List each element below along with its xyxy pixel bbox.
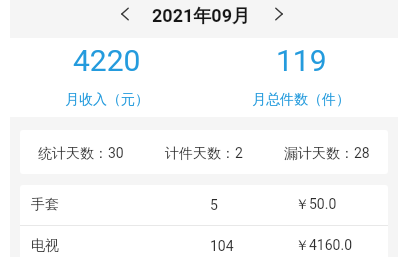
staticText: ￥4160.0 [295, 237, 353, 255]
staticText: 月总件数（件） [252, 91, 350, 109]
staticText: 计件天数：2 [165, 145, 243, 163]
staticText: 2021年09月 [152, 5, 250, 28]
button[interactable]: 手套 [20, 185, 388, 225]
button[interactable]: 电视 [20, 226, 388, 257]
button[interactable]: 统计天数：30 [20, 130, 388, 174]
staticText: 漏计天数：28 [284, 145, 370, 163]
staticText: 电视 [31, 237, 59, 255]
staticText: 119 [276, 43, 327, 78]
staticText: 104 [210, 238, 234, 254]
staticText: 手套 [31, 196, 59, 214]
button[interactable]: 119 [204, 38, 398, 117]
staticText: 5 [210, 197, 218, 213]
staticText: 4220 [73, 43, 141, 78]
button[interactable]: Previous month [111, 0, 139, 27]
button[interactable]: Next month [265, 0, 293, 27]
staticText: 月收入（元） [65, 91, 149, 109]
button[interactable]: 4220 [10, 38, 204, 117]
staticText: 统计天数：30 [38, 145, 124, 163]
staticText: ￥50.0 [295, 196, 337, 214]
